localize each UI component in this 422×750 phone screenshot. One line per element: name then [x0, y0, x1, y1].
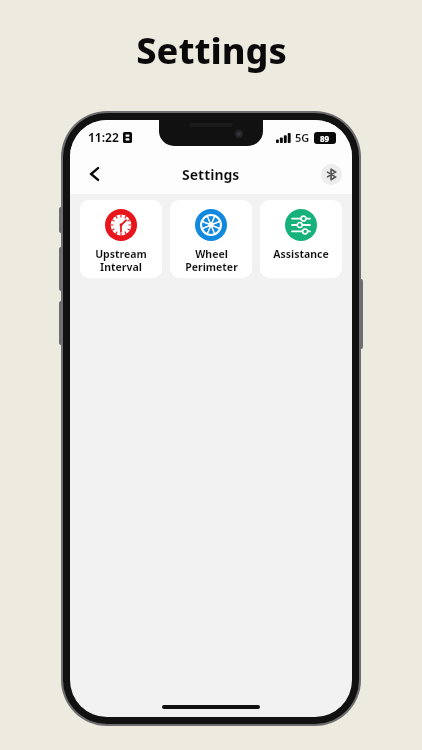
staticText: Upstream Interval [95, 247, 147, 272]
button[interactable]: Assistance [260, 200, 342, 278]
staticText: Assistance [273, 247, 329, 261]
staticText: 11:22 [88, 129, 119, 145]
button[interactable]: Wheel Perimeter [170, 200, 252, 278]
staticText: Settings [182, 165, 240, 184]
button[interactable]: Back [78, 157, 112, 191]
staticText: Settings [136, 26, 287, 75]
staticText: Wheel Perimeter [185, 247, 238, 272]
staticText: 5G [295, 130, 310, 145]
button[interactable]: Upstream Interval [80, 200, 162, 278]
button[interactable]: Bluetooth [321, 164, 342, 185]
staticText: 89 [320, 133, 330, 144]
